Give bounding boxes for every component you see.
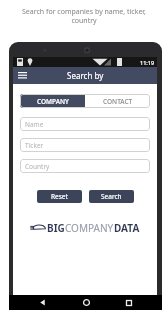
staticText: Name [25,120,44,129]
staticText: Search for companies by name, ticker, co… [22,7,146,25]
button[interactable]: Country [20,159,150,173]
staticText: Country [25,162,50,171]
button[interactable]: Back [31,295,53,310]
staticText: Search [101,192,122,201]
button[interactable]: Open navigation drawer [16,69,29,82]
button[interactable]: Recent apps [118,295,140,310]
staticText: BIG [47,221,65,235]
button[interactable]: CONTACT [85,94,150,108]
button[interactable]: Home [75,295,97,310]
staticText: COMPANY [37,97,69,106]
button[interactable]: Search [89,190,134,203]
staticText: Reset [51,192,68,201]
button[interactable]: Reset [37,190,82,203]
button[interactable]: Ticker [20,138,150,152]
staticText: Ticker [25,141,44,150]
button[interactable]: Name [20,117,150,131]
staticText: CONTACT [103,97,133,106]
staticText: COMPANY [65,221,114,235]
staticText: DATA [114,221,140,235]
staticText: Search by [67,70,104,81]
staticText: 11:19 [140,59,155,66]
button[interactable]: COMPANY [20,94,85,108]
